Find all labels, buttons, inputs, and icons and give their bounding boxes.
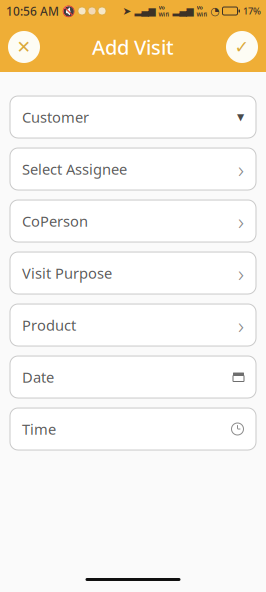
staticText: Select Assignee [22, 159, 127, 179]
staticText: 🔇 [62, 5, 75, 17]
button[interactable]: Save [222, 25, 262, 69]
staticText: › [238, 154, 244, 184]
staticText: › [238, 206, 244, 236]
staticText: Product [22, 315, 76, 335]
button[interactable]: Date [10, 356, 256, 398]
staticText: ▂▄▆ [172, 6, 193, 16]
staticText: Vo Wifi [158, 4, 169, 18]
button[interactable]: Close [4, 25, 44, 69]
button[interactable]: Customer [10, 96, 256, 138]
staticText: ▂▄▆ [134, 6, 155, 16]
button[interactable]: Time [10, 408, 256, 450]
button[interactable]: Visit Purpose [10, 252, 256, 294]
staticText: › [238, 258, 244, 288]
staticText: › [238, 310, 244, 340]
staticText: Add Visit [92, 34, 174, 60]
staticText: Date [22, 367, 54, 387]
button[interactable]: CoPerson [10, 200, 256, 242]
staticText: ✓ [234, 37, 249, 57]
staticText: Customer [22, 107, 89, 127]
staticText: 17% [243, 5, 261, 17]
button[interactable]: Select Assignee [10, 148, 256, 190]
staticText: ◔ [210, 5, 219, 17]
staticText: ➤ [122, 5, 131, 17]
staticText: ✕ [16, 37, 31, 57]
staticText: 10:56 AM [6, 3, 59, 19]
staticText: Vo Wifi [196, 4, 207, 18]
staticText: CoPerson [22, 211, 88, 231]
staticText: ▼ [237, 112, 244, 122]
staticText: Time [22, 419, 56, 439]
staticText: Visit Purpose [22, 263, 112, 283]
button[interactable]: Product [10, 304, 256, 346]
